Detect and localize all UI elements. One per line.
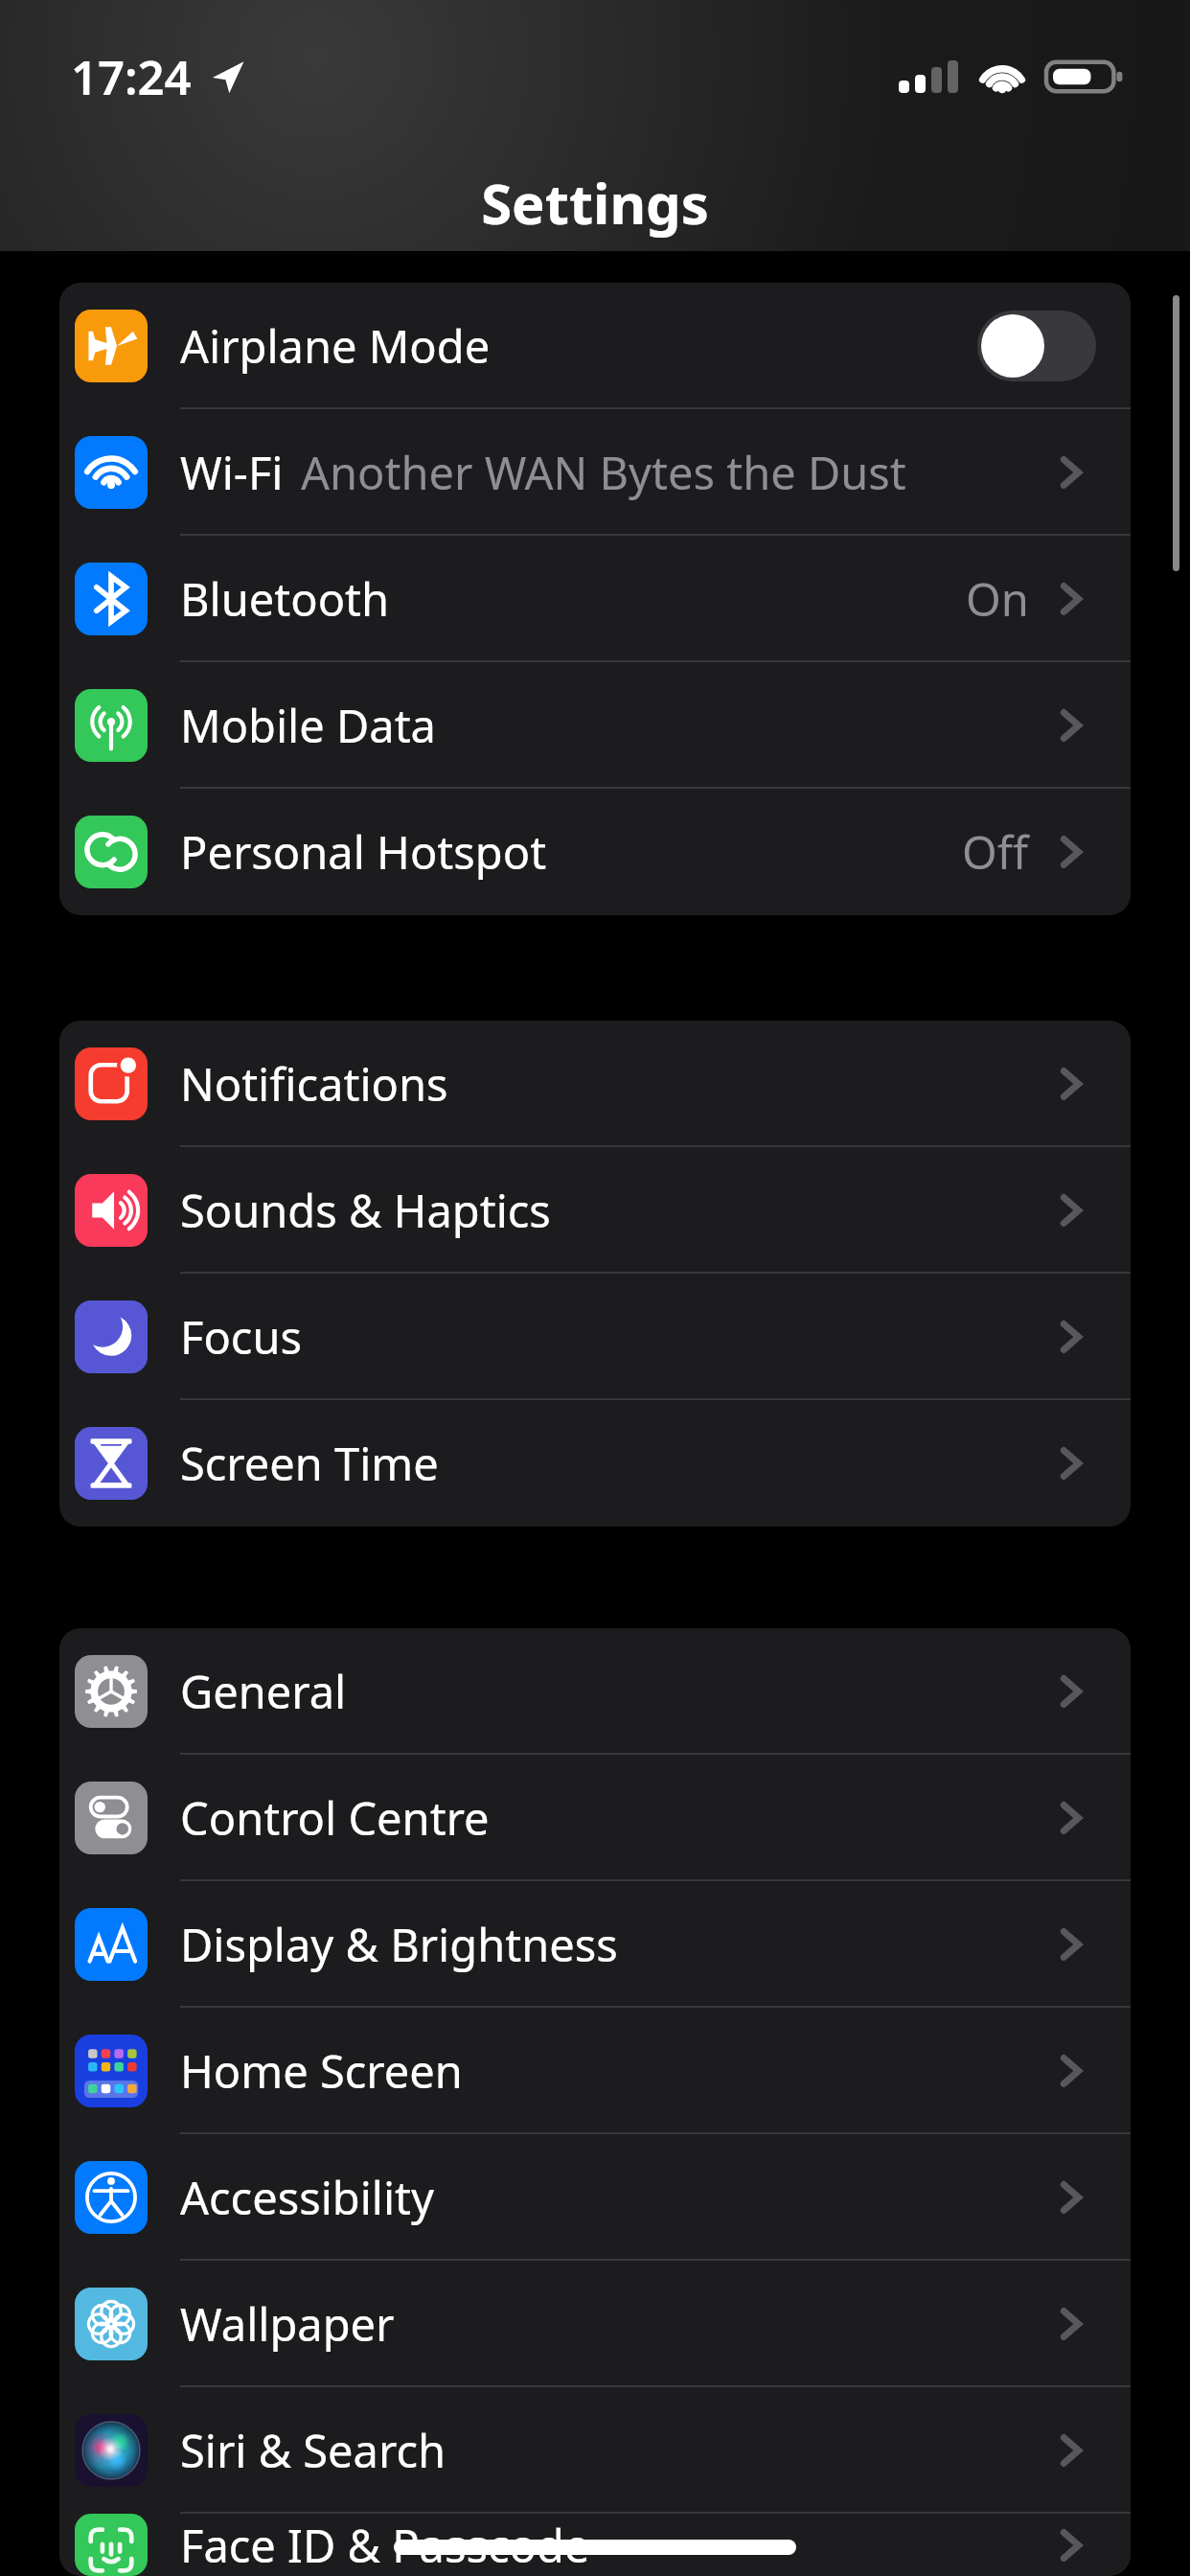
staticText: Sounds & Haptics xyxy=(180,1180,551,1241)
button[interactable]: Wallpaper xyxy=(59,2261,1131,2387)
staticText: Airplane Mode xyxy=(180,315,491,377)
staticText: Focus xyxy=(180,1306,302,1368)
staticText: Notifications xyxy=(180,1053,448,1115)
staticText: Mobile Data xyxy=(180,695,436,756)
button[interactable]: Display & Brightness xyxy=(59,1881,1131,2008)
staticText: Face ID & Passcode xyxy=(180,2515,590,2576)
button[interactable]: General xyxy=(59,1628,1131,1755)
staticText: Settings xyxy=(481,165,709,241)
button[interactable]: Airplane Mode toggle xyxy=(977,310,1096,381)
button[interactable]: Home Screen xyxy=(59,2008,1131,2134)
button[interactable]: Bluetooth xyxy=(59,536,1131,662)
button[interactable]: Control Centre xyxy=(59,1755,1131,1881)
button[interactable]: Siri & Search xyxy=(59,2387,1131,2514)
button[interactable]: Personal Hotspot xyxy=(59,789,1131,915)
button[interactable]: Wi-Fi xyxy=(59,409,1131,536)
button[interactable]: Face ID & Passcode xyxy=(59,2514,1131,2576)
staticText: Accessibility xyxy=(180,2167,435,2228)
button[interactable]: Airplane Mode xyxy=(59,283,1131,409)
staticText: Siri & Search xyxy=(180,2420,446,2481)
button[interactable]: Notifications xyxy=(59,1021,1131,1147)
staticText: Off xyxy=(962,821,1029,883)
staticText: 17:24 xyxy=(71,45,192,109)
button[interactable]: Mobile Data xyxy=(59,662,1131,789)
button[interactable]: Accessibility xyxy=(59,2134,1131,2261)
staticText: Screen Time xyxy=(180,1433,439,1494)
staticText: On xyxy=(966,568,1029,630)
button[interactable]: Sounds & Haptics xyxy=(59,1147,1131,1274)
staticText: Bluetooth xyxy=(180,568,390,630)
staticText: Home Screen xyxy=(180,2040,463,2102)
staticText: Display & Brightness xyxy=(180,1914,618,1975)
staticText: Control Centre xyxy=(180,1787,490,1849)
button[interactable]: Focus xyxy=(59,1274,1131,1400)
staticText: Wallpaper xyxy=(180,2293,395,2355)
staticText: Wi-Fi xyxy=(180,442,284,503)
staticText: Personal Hotspot xyxy=(180,821,547,883)
staticText: General xyxy=(180,1661,347,1722)
button[interactable]: Screen Time xyxy=(59,1400,1131,1527)
staticText: Another WAN Bytes the Dust xyxy=(301,442,906,503)
